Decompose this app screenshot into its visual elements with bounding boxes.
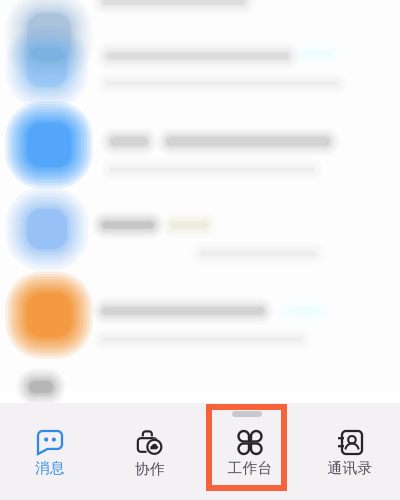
staticText: 通讯录 [327,459,372,477]
button[interactable]: 消息 [0,403,100,500]
button[interactable]: 通讯录 [300,403,400,500]
button[interactable]: 协作 [100,403,200,500]
staticText: 协作 [135,460,165,478]
staticText: 工作台 [227,459,272,477]
button[interactable]: 工作台 [200,403,300,500]
staticText: 消息 [35,459,65,477]
